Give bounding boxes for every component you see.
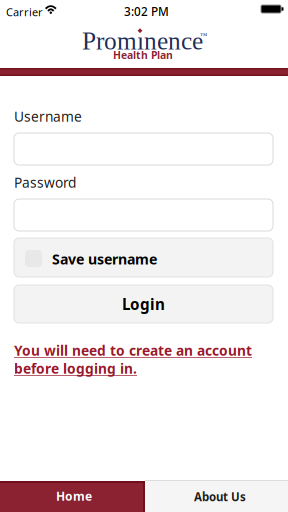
staticText: Save username — [52, 249, 157, 269]
button[interactable]: About Us — [145, 481, 288, 512]
staticText: Health Plan — [113, 48, 173, 62]
staticText: Home — [56, 488, 92, 504]
button[interactable]: You will need to create an account — [14, 341, 270, 377]
staticText: ™ — [200, 31, 207, 40]
staticText: before logging in. — [14, 359, 137, 378]
staticText: Username — [14, 107, 82, 126]
staticText: You will need to create an account — [14, 341, 252, 360]
staticText: Login — [122, 294, 165, 314]
button[interactable]: Login — [14, 285, 273, 323]
staticText: Password — [14, 173, 76, 192]
staticText: 3:02 PM — [124, 3, 169, 19]
button[interactable]: Save username — [14, 238, 273, 277]
staticText: About Us — [194, 489, 246, 505]
staticText: Promınence — [82, 27, 203, 55]
button[interactable]: Home — [0, 481, 145, 512]
staticText: Carrier — [6, 4, 43, 19]
